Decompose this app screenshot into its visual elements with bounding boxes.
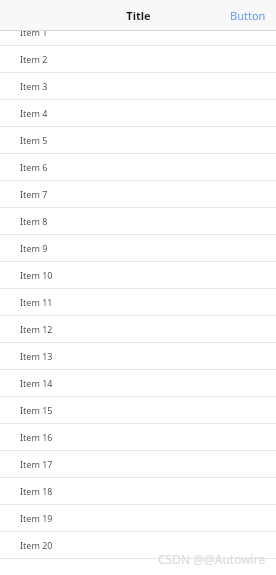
staticText: Item 1 <box>20 26 48 38</box>
button[interactable]: Item 11 <box>0 289 276 315</box>
button[interactable]: Item 6 <box>0 154 276 180</box>
button[interactable]: Item 16 <box>0 424 276 450</box>
staticText: Item 11 <box>20 296 53 308</box>
staticText: Item 7 <box>20 188 48 200</box>
button[interactable]: Item 8 <box>0 208 276 234</box>
button[interactable]: Item 17 <box>0 451 276 477</box>
staticText: Item 15 <box>20 404 53 416</box>
staticText: Item 20 <box>20 539 53 551</box>
button[interactable]: Item 4 <box>0 100 276 126</box>
button[interactable]: Item 9 <box>0 235 276 261</box>
button[interactable]: Button <box>220 8 276 23</box>
button[interactable]: Item 15 <box>0 397 276 423</box>
staticText: Item 13 <box>20 350 53 362</box>
button[interactable]: Item 2 <box>0 46 276 72</box>
button[interactable]: Item 10 <box>0 262 276 288</box>
button[interactable]: Item 13 <box>0 343 276 369</box>
button[interactable]: Item 19 <box>0 505 276 531</box>
button[interactable]: Item 5 <box>0 127 276 153</box>
button[interactable]: Item 20 <box>0 532 276 558</box>
staticText: Item 2 <box>20 53 48 65</box>
button[interactable]: Item 3 <box>0 73 276 99</box>
staticText: Item 14 <box>20 377 53 389</box>
staticText: Item 9 <box>20 242 48 254</box>
staticText: Item 3 <box>20 80 48 92</box>
staticText: Item 17 <box>20 458 53 470</box>
staticText: Item 16 <box>20 431 53 443</box>
button[interactable]: Item 14 <box>0 370 276 396</box>
staticText: Item 12 <box>20 323 53 335</box>
button[interactable]: Item 18 <box>0 478 276 504</box>
button[interactable]: Item 12 <box>0 316 276 342</box>
staticText: Button <box>230 8 266 23</box>
staticText: Item 10 <box>20 269 53 281</box>
staticText: Item 4 <box>20 107 48 119</box>
staticText: Item 5 <box>20 134 48 146</box>
staticText: Item 18 <box>20 485 53 497</box>
staticText: Title <box>126 8 151 23</box>
staticText: CSDN @@Autowire <box>158 551 266 567</box>
staticText: Item 19 <box>20 512 53 524</box>
button[interactable]: Item 1 <box>0 19 276 45</box>
staticText: Item 8 <box>20 215 48 227</box>
button[interactable]: Item 7 <box>0 181 276 207</box>
staticText: Item 6 <box>20 161 48 173</box>
